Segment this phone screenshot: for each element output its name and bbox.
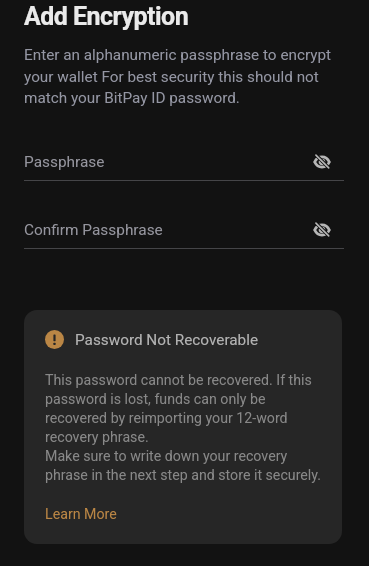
staticText: Learn More [45,506,117,523]
staticText: Password Not Recoverable [75,331,259,349]
staticText: Enter an alphanumeric passphrase to encr… [24,46,347,106]
staticText: Add Encryption [24,2,189,31]
button[interactable]: Toggle passphrase visibility [309,151,335,173]
button[interactable]: Learn More [45,495,123,526]
staticText: Passphrase [24,153,105,171]
button[interactable]: Toggle passphrase visibility [309,219,335,241]
staticText: Confirm Passphrase [24,221,163,239]
staticText: This password cannot be recovered. If th… [45,372,329,484]
